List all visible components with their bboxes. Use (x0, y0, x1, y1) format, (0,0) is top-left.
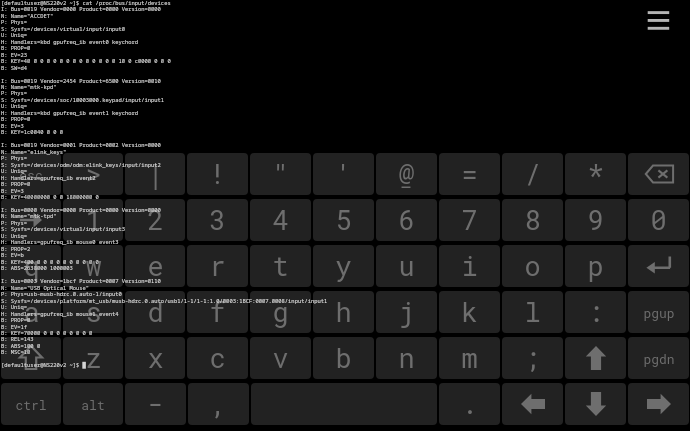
staticText: esc (19, 166, 43, 183)
staticText: 6 (398, 202, 415, 238)
staticText: H: Handlers=kbd gpufreq_ib event0 keycho… (1, 38, 139, 45)
button[interactable]: q (1, 245, 61, 287)
button[interactable]: u (376, 245, 437, 287)
button[interactable]: up (565, 337, 626, 379)
staticText: N: Name="USB Optical Mouse" (1, 284, 90, 291)
button[interactable]: right (628, 383, 689, 425)
button[interactable]: o (502, 245, 563, 287)
staticText: ; (524, 340, 541, 376)
staticText: P: Phys= (1, 89, 28, 96)
button[interactable]: m (439, 337, 500, 379)
staticText: B: KEY=70000 0 0 0 0 0 0 0 0 (1, 329, 93, 336)
staticText: U: Uniq= (1, 167, 28, 174)
button[interactable]: . (439, 383, 500, 425)
button[interactable]: w (63, 245, 123, 287)
staticText: P: Phys=usb-musb-hdrc.0.auto-1/input0 (1, 290, 122, 297)
button[interactable]: j (376, 291, 437, 333)
staticText: | (147, 156, 164, 192)
button[interactable]: 4 (250, 199, 311, 241)
button[interactable]: d (125, 291, 185, 333)
button[interactable]: h (313, 291, 374, 333)
staticText: P: Phys= (1, 154, 28, 161)
button[interactable]: 0 (628, 199, 689, 241)
staticText: . (461, 386, 478, 422)
button[interactable]: z (63, 337, 123, 379)
button[interactable]: s (63, 291, 123, 333)
button[interactable]: 1 (63, 199, 123, 241)
staticText: x (147, 340, 164, 376)
button[interactable]: ; (502, 337, 563, 379)
staticText: U: Uniq= (1, 232, 28, 239)
button[interactable]: 8 (502, 199, 563, 241)
staticText: ctrl (15, 396, 47, 413)
button[interactable]: @ (376, 153, 437, 195)
button[interactable]: ! (187, 153, 248, 195)
button[interactable]: * (565, 153, 626, 195)
button[interactable]: b (313, 337, 374, 379)
button[interactable]: alt (63, 383, 123, 425)
button[interactable]: 7 (439, 199, 500, 241)
button[interactable]: 6 (376, 199, 437, 241)
button[interactable]: l (502, 291, 563, 333)
staticText: B: EV=3 (1, 122, 24, 129)
staticText: y (335, 248, 352, 284)
staticText: B: KEY=400 0 0 0 0 0 0 0 0 0 0 (1, 258, 99, 265)
button[interactable]: esc (1, 153, 61, 195)
staticText: B: PROP=0 (1, 316, 31, 323)
button[interactable]: a (1, 291, 61, 333)
staticText: I: Bus=0019 Vendor=0000 Product=0000 Ver… (1, 5, 161, 12)
button[interactable]: p (565, 245, 626, 287)
button[interactable]: 9 (565, 199, 626, 241)
button[interactable]: pgdn (628, 337, 689, 379)
button[interactable]: k (439, 291, 500, 333)
staticText: @ (398, 156, 415, 192)
button[interactable]: > (63, 153, 123, 195)
button[interactable]: y (313, 245, 374, 287)
button[interactable]: ctrl (1, 383, 61, 425)
staticText: B: EV=23 (1, 51, 28, 58)
staticText: a (23, 294, 40, 330)
button[interactable]: v (250, 337, 311, 379)
button[interactable]: r (187, 245, 248, 287)
button[interactable]: Menu (640, 4, 677, 41)
staticText: q (23, 248, 40, 284)
button[interactable]: g (250, 291, 311, 333)
button[interactable]: / (502, 153, 563, 195)
staticText: b (335, 340, 352, 376)
button[interactable]: n (376, 337, 437, 379)
button[interactable]: 3 (187, 199, 248, 241)
button[interactable]: | (125, 153, 185, 195)
staticText: 8 (524, 202, 541, 238)
staticText: i (461, 248, 478, 284)
button[interactable]: pgup (628, 291, 689, 333)
button[interactable]: shift (1, 337, 61, 379)
button[interactable]: " (250, 153, 311, 195)
staticText: H: Handlers=kbd gpufreq_ib event1 keycho… (1, 109, 139, 116)
staticText: B: KEY=40 0 0 0 0 0 0 0 0 0 0 0 0 0 10 0… (1, 57, 171, 64)
staticText: 7 (461, 202, 478, 238)
button[interactable]: ' (313, 153, 374, 195)
button[interactable]: e (125, 245, 185, 287)
button[interactable]: c (187, 337, 248, 379)
button[interactable]: , (188, 383, 249, 425)
button[interactable]: bsp (628, 153, 689, 195)
button[interactable]: = (439, 153, 500, 195)
staticText: 1 (85, 202, 102, 238)
button[interactable]: - (125, 383, 186, 425)
button[interactable]: t (250, 245, 311, 287)
button[interactable]: f (187, 291, 248, 333)
button[interactable]: down (565, 383, 626, 425)
button[interactable]: 5 (313, 199, 374, 241)
button[interactable]: tab (1, 199, 61, 241)
button[interactable]: i (439, 245, 500, 287)
staticText: k (461, 294, 478, 330)
button[interactable]: left (502, 383, 563, 425)
button[interactable]: : (565, 291, 626, 333)
button[interactable]: x (125, 337, 185, 379)
button[interactable]: 2 (125, 199, 185, 241)
staticText: U: Uniq= (1, 102, 28, 109)
staticText: u (398, 248, 415, 284)
button[interactable]: enter (628, 245, 689, 287)
staticText: 4 (272, 202, 289, 238)
